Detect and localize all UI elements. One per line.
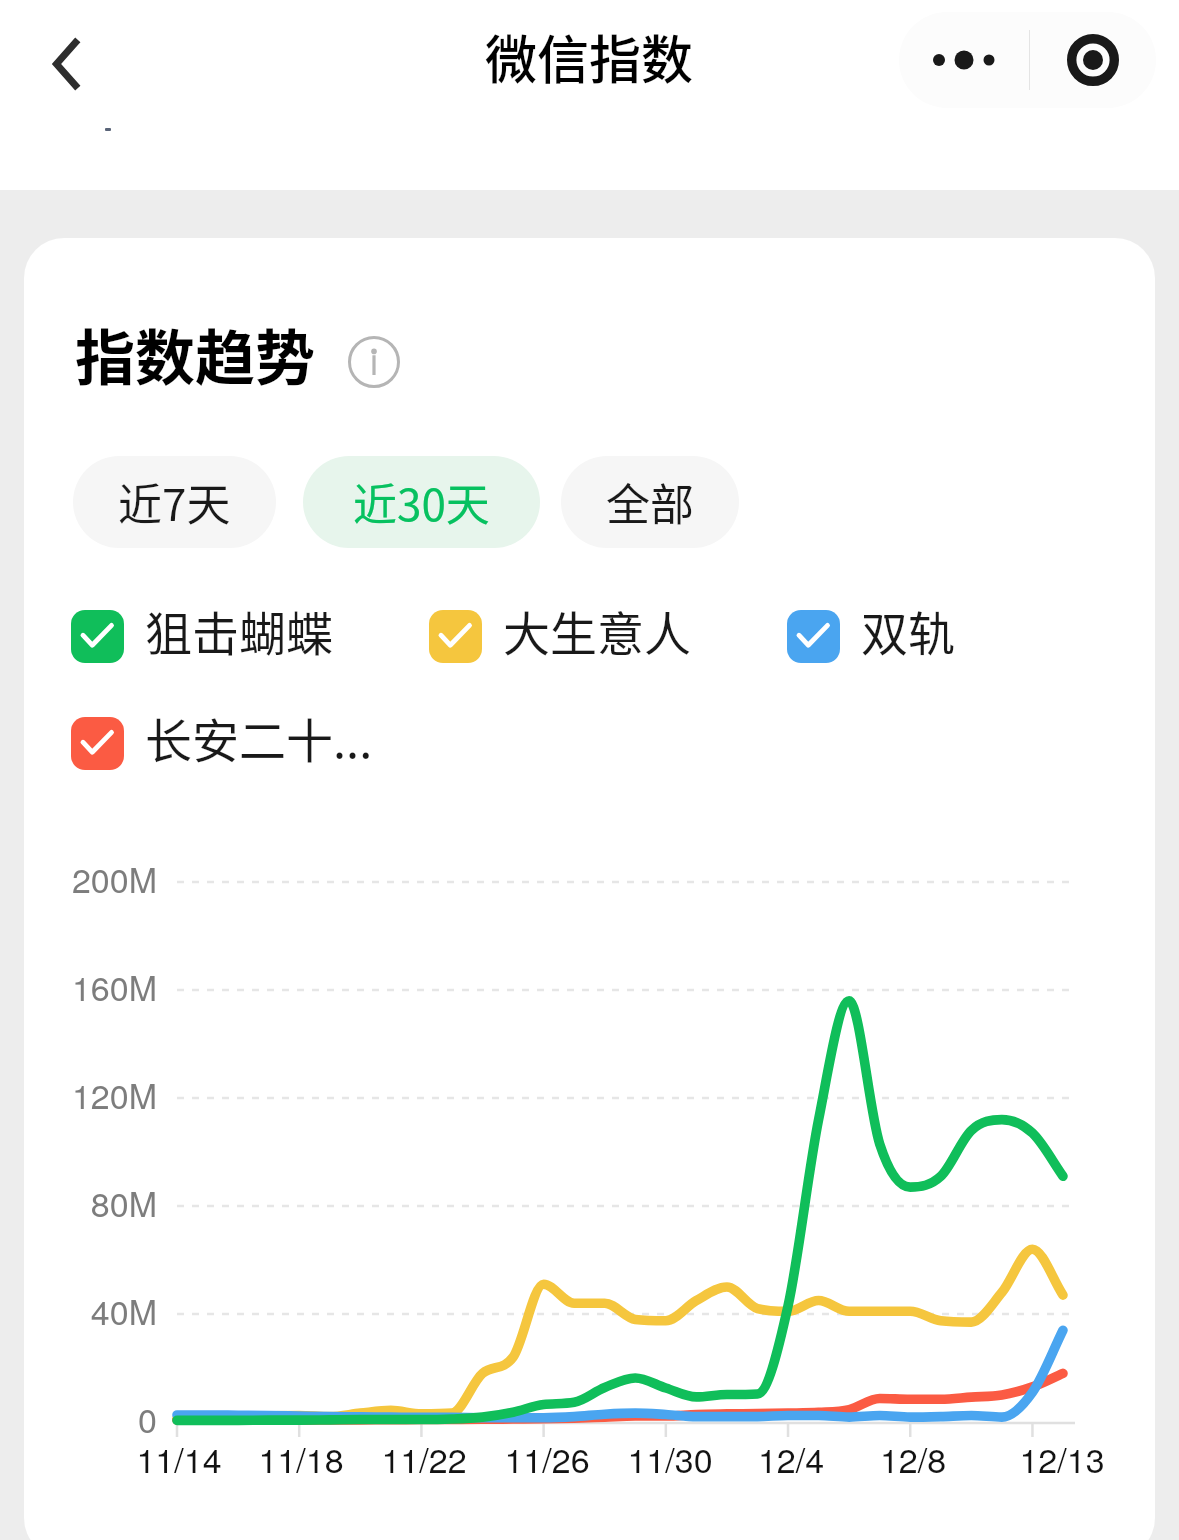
staticText: 0 — [24, 1394, 157, 1443]
staticText: 12/4 — [711, 1434, 871, 1483]
staticText: 200M — [24, 854, 157, 903]
staticText: 大生意人 — [503, 596, 691, 664]
staticText: 11/18 — [221, 1434, 381, 1483]
button[interactable]: 全部 — [561, 456, 739, 548]
button[interactable]: More options — [899, 12, 1029, 108]
staticText: 12/13 — [982, 1434, 1142, 1483]
button[interactable]: Close mini program — [1030, 12, 1156, 108]
staticText: 微信指数 — [485, 19, 694, 94]
staticText: 指数趋势 — [75, 310, 315, 397]
button[interactable]: 近30天 — [303, 456, 540, 548]
button[interactable]: 狙击蝴蝶 — [71, 602, 333, 670]
staticText: 80M — [24, 1178, 157, 1227]
staticText: 全部 — [606, 470, 694, 534]
button[interactable]: 大生意人 — [429, 602, 691, 670]
button[interactable]: Back — [18, 9, 114, 119]
button[interactable]: 近7天 — [73, 456, 276, 548]
staticText: 近7天 — [118, 470, 231, 534]
button[interactable]: 长安二十... — [71, 709, 373, 777]
staticText: 12/8 — [833, 1434, 993, 1483]
staticText: 双轨 — [861, 596, 955, 664]
staticText: 120M — [24, 1070, 157, 1119]
staticText: 40M — [24, 1286, 157, 1335]
staticText: 11/22 — [344, 1434, 504, 1483]
button[interactable]: 双轨 — [787, 602, 955, 670]
staticText: 160M — [24, 962, 157, 1011]
staticText: 11/30 — [590, 1434, 750, 1483]
staticText: 11/14 — [99, 1434, 259, 1483]
button[interactable]: Info — [348, 336, 400, 388]
staticText: 近30天 — [353, 470, 490, 534]
staticText: 长安二十... — [145, 703, 373, 771]
staticText: 狙击蝴蝶 — [145, 596, 333, 664]
staticText: 11/26 — [467, 1434, 627, 1483]
